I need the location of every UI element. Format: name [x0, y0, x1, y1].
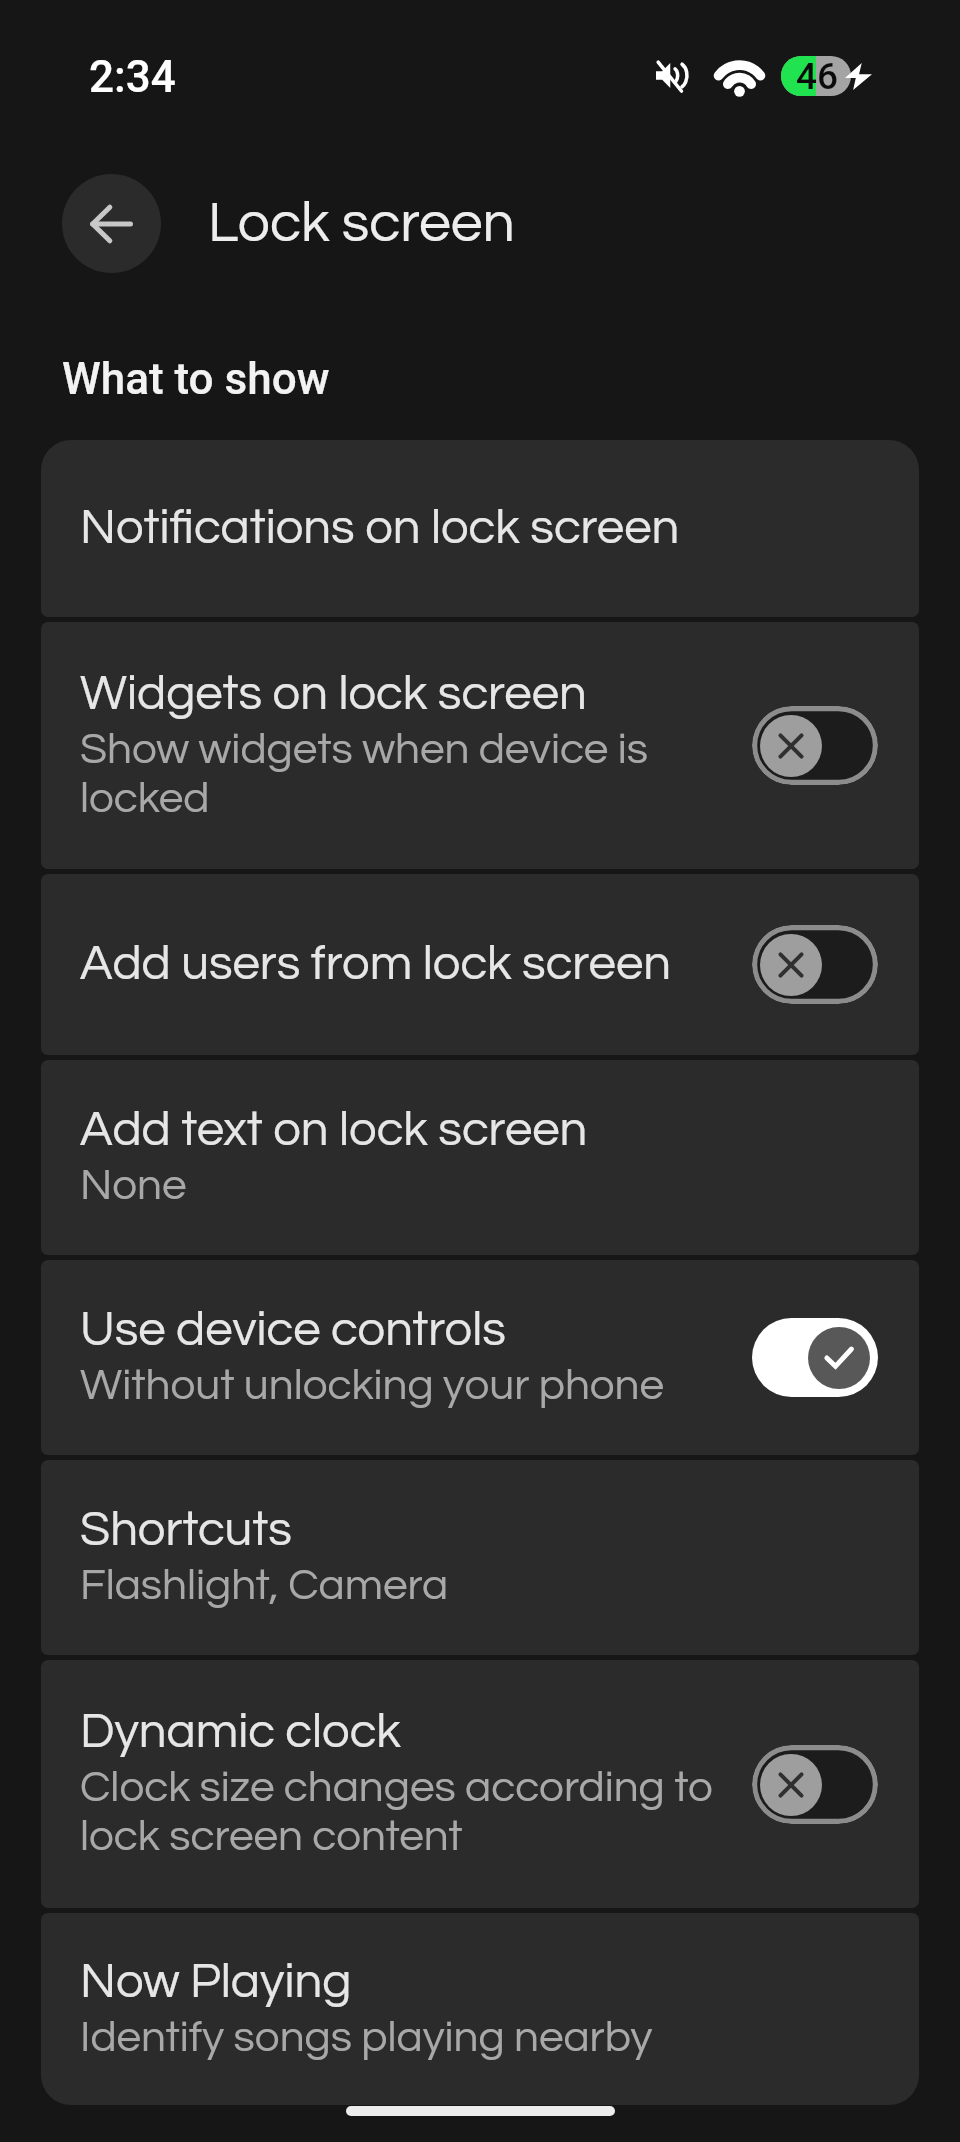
button[interactable]: Shortcuts: [41, 1460, 919, 1655]
staticText: Notifications on lock screen: [80, 503, 680, 553]
staticText: Identify songs playing nearby: [80, 2015, 725, 2060]
staticText: Now Playing: [80, 1957, 352, 2007]
staticText: Lock screen: [208, 194, 515, 253]
staticText: Shortcuts: [80, 1505, 292, 1555]
button[interactable]: Widgets on lock screen: [41, 622, 919, 869]
button[interactable]: Add users from lock screen: [41, 874, 919, 1055]
staticText: Add users from lock screen: [80, 939, 671, 989]
staticText: Without unlocking your phone: [80, 1363, 725, 1408]
staticText: Dynamic clock: [80, 1707, 401, 1757]
button[interactable]: Dynamic clock: [41, 1660, 919, 1908]
button[interactable]: Toggle off: [752, 925, 878, 1004]
staticText: Show widgets when device is locked: [80, 727, 725, 821]
staticText: 2:34: [89, 51, 176, 103]
button[interactable]: Notifications on lock screen: [41, 440, 919, 617]
staticText: Use device controls: [80, 1305, 506, 1355]
staticText: None: [80, 1163, 725, 1208]
staticText: Widgets on lock screen: [80, 669, 587, 719]
button[interactable]: Use device controls: [41, 1260, 919, 1455]
button[interactable]: Add text on lock screen: [41, 1060, 919, 1255]
staticText: Flashlight, Camera: [80, 1563, 725, 1608]
staticText: What to show: [62, 353, 330, 405]
button[interactable]: Back: [62, 174, 161, 273]
staticText: 46: [796, 55, 839, 98]
staticText: Clock size changes according to lock scr…: [80, 1765, 725, 1859]
staticText: Add text on lock screen: [80, 1105, 588, 1155]
button[interactable]: Toggle on: [752, 1318, 878, 1397]
button[interactable]: Toggle off: [752, 1745, 878, 1824]
button[interactable]: Toggle off: [752, 706, 878, 785]
button[interactable]: Now Playing: [41, 1913, 919, 2105]
